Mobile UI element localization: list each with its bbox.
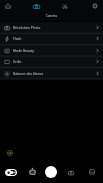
button[interactable]: Switch camera xyxy=(68,170,74,176)
button[interactable]: Mode Beauty xyxy=(0,45,103,56)
button[interactable]: Gallery xyxy=(89,169,95,175)
button[interactable]: Settings xyxy=(92,3,98,9)
button[interactable]: Camera xyxy=(33,4,40,9)
button[interactable]: Filters xyxy=(7,150,13,156)
button[interactable]: Home xyxy=(5,3,11,9)
staticText: Balance des blancs xyxy=(13,71,44,76)
button[interactable]: Balance des blancs xyxy=(0,68,103,79)
staticText: Flash xyxy=(13,36,22,41)
staticText: Grille xyxy=(13,59,22,64)
button[interactable]: AI mode xyxy=(29,168,36,175)
staticText: Résolution Photo xyxy=(13,25,41,30)
button[interactable]: Shutter xyxy=(45,166,57,178)
button[interactable]: Connect xyxy=(62,3,68,9)
staticText: Mode Beauty xyxy=(13,48,35,53)
button[interactable]: Photo video mode xyxy=(5,169,17,176)
button[interactable]: Grille xyxy=(0,56,103,67)
button[interactable]: Flash xyxy=(0,33,103,44)
staticText: Caméra xyxy=(46,14,57,18)
button[interactable]: Résolution Photo xyxy=(0,22,103,33)
